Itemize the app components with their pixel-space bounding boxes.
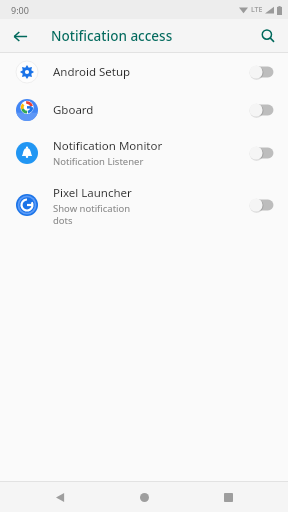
button[interactable]: Gboard <box>0 91 288 129</box>
button[interactable]: Pixel Launcher <box>0 177 288 233</box>
button[interactable]: Android Setup <box>0 53 288 91</box>
staticText: 9:00 <box>11 4 29 16</box>
staticText: Notification Listener <box>53 155 144 168</box>
button[interactable]: Back <box>46 483 74 511</box>
staticText: LTE <box>251 5 263 15</box>
staticText: Gboard <box>53 102 94 118</box>
button[interactable]: Back <box>7 23 33 49</box>
button[interactable]: Toggle Pixel Launcher <box>236 177 288 233</box>
button[interactable]: Toggle Android Setup <box>236 53 288 91</box>
button[interactable]: Toggle Notification Monitor <box>236 129 288 177</box>
button[interactable]: Notification Monitor <box>0 129 288 177</box>
button[interactable]: Recents <box>214 483 242 511</box>
button[interactable]: Toggle Gboard <box>236 91 288 129</box>
button[interactable]: Home <box>130 483 158 511</box>
button[interactable]: Search <box>255 23 281 49</box>
staticText: Android Setup <box>53 64 131 80</box>
staticText: Pixel Launcher <box>53 185 132 201</box>
staticText: Notification Monitor <box>53 138 163 154</box>
staticText: Notification access <box>51 27 173 45</box>
staticText: Show notification dots <box>53 202 131 226</box>
